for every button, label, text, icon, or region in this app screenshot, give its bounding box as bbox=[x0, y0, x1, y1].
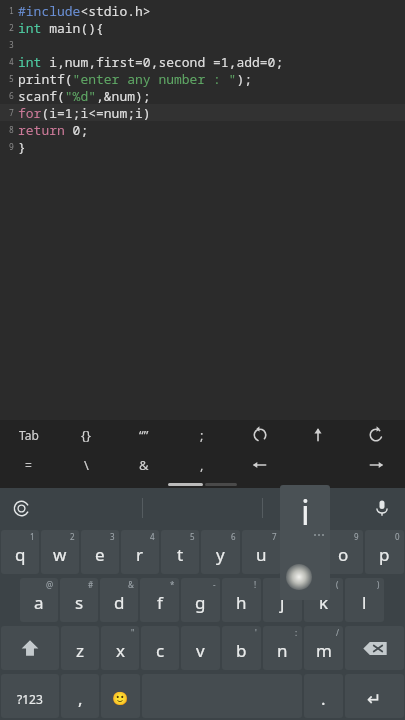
button[interactable]: 9 bbox=[324, 530, 363, 574]
staticText: 8 bbox=[313, 531, 318, 542]
staticText: # bbox=[88, 579, 94, 590]
staticText: d bbox=[114, 591, 125, 614]
staticText: , bbox=[200, 456, 204, 474]
staticText: 9 bbox=[354, 531, 359, 542]
staticText: ' bbox=[255, 627, 257, 638]
button[interactable]: , bbox=[61, 674, 99, 718]
button[interactable]: \ bbox=[57, 450, 115, 480]
staticText: 7 bbox=[9, 107, 14, 118]
staticText: 2 bbox=[9, 22, 14, 33]
button[interactable]: * bbox=[140, 578, 179, 622]
staticText: scanf("%d",&num); bbox=[18, 87, 151, 104]
staticText: @ bbox=[46, 579, 54, 590]
button[interactable]: : bbox=[263, 626, 302, 670]
staticText: i bbox=[301, 489, 310, 535]
button[interactable]: # bbox=[60, 578, 98, 622]
staticText: 6 bbox=[231, 531, 236, 542]
staticText: ! bbox=[254, 579, 257, 590]
button[interactable]: 8 bbox=[283, 530, 322, 574]
button[interactable]: Undo bbox=[231, 420, 289, 450]
button[interactable]: ! bbox=[222, 578, 261, 622]
button[interactable]: = bbox=[0, 450, 57, 480]
staticText: t bbox=[177, 543, 184, 566]
button[interactable]: v bbox=[181, 626, 220, 670]
staticText: int i,num,first=0,second =1,add=0; bbox=[18, 53, 284, 70]
button[interactable]: , bbox=[173, 450, 231, 480]
button[interactable]: ↵ bbox=[345, 674, 404, 718]
staticText: u bbox=[256, 543, 267, 566]
staticText: } bbox=[18, 138, 26, 155]
staticText: b bbox=[236, 639, 247, 662]
button[interactable]: Tab bbox=[0, 420, 57, 450]
button[interactable]: ' bbox=[222, 626, 261, 670]
button[interactable]: - bbox=[181, 578, 220, 622]
staticText: x bbox=[116, 639, 125, 662]
staticText: h bbox=[236, 591, 247, 614]
button[interactable]: c bbox=[141, 626, 179, 670]
button[interactable]: Voice input bbox=[365, 491, 399, 525]
staticText: / bbox=[336, 627, 339, 638]
staticText: ?123 bbox=[17, 691, 43, 707]
staticText: c bbox=[156, 639, 165, 662]
button[interactable]: & bbox=[100, 578, 138, 622]
button[interactable]: 0 bbox=[365, 530, 404, 574]
staticText: ; bbox=[200, 426, 204, 444]
staticText: Tab bbox=[19, 427, 39, 443]
button[interactable]: Move right bbox=[347, 450, 405, 480]
staticText: s bbox=[75, 591, 84, 614]
button[interactable]: {} bbox=[57, 420, 115, 450]
staticText: w bbox=[53, 543, 67, 566]
button[interactable]: “” bbox=[115, 420, 173, 450]
button[interactable]: Redo bbox=[347, 420, 405, 450]
button[interactable]: ? bbox=[263, 578, 302, 622]
button[interactable]: 5 bbox=[161, 530, 199, 574]
staticText: f bbox=[157, 591, 163, 614]
staticText: 2 bbox=[70, 531, 75, 542]
button[interactable]: Shift bbox=[1, 626, 59, 670]
staticText: , bbox=[78, 687, 83, 710]
staticText: 7 bbox=[272, 531, 277, 542]
button[interactable]: 6 bbox=[201, 530, 240, 574]
staticText: for(i=1;i<=num;i) bbox=[18, 104, 151, 121]
button[interactable]: z bbox=[61, 626, 99, 670]
button[interactable]: Move left bbox=[231, 450, 289, 480]
staticText: k bbox=[319, 591, 329, 614]
button[interactable]: Translate bbox=[4, 491, 38, 525]
button[interactable]: ) bbox=[345, 578, 384, 622]
staticText: 1 bbox=[9, 5, 14, 16]
staticText: j bbox=[280, 591, 285, 614]
button[interactable]: 3 bbox=[81, 530, 119, 574]
button[interactable]: / bbox=[304, 626, 343, 670]
staticText: \ bbox=[84, 456, 89, 474]
staticText: y bbox=[216, 543, 225, 566]
button[interactable]: 7 bbox=[242, 530, 281, 574]
staticText: z bbox=[76, 639, 84, 662]
button[interactable]: @ bbox=[20, 578, 58, 622]
staticText: l bbox=[362, 591, 367, 614]
staticText: - bbox=[213, 579, 216, 590]
staticText: ↵ bbox=[367, 689, 382, 709]
staticText: 1 bbox=[30, 531, 35, 542]
staticText: p bbox=[379, 543, 390, 566]
button[interactable]: 2 bbox=[41, 530, 79, 574]
staticText: n bbox=[277, 639, 288, 662]
button[interactable]: ?123 bbox=[1, 674, 59, 718]
button[interactable]: 4 bbox=[121, 530, 159, 574]
staticText: 4 bbox=[9, 56, 14, 67]
button[interactable]: Backspace bbox=[345, 626, 404, 670]
button[interactable]: 🙂 bbox=[101, 674, 140, 718]
button[interactable]: " bbox=[101, 626, 139, 670]
staticText: 4 bbox=[150, 531, 155, 542]
staticText: int main(){ bbox=[18, 19, 104, 36]
button[interactable]: 1 bbox=[1, 530, 39, 574]
staticText: : bbox=[295, 627, 298, 638]
button[interactable]: . bbox=[304, 674, 343, 718]
button[interactable]: ( bbox=[304, 578, 343, 622]
button[interactable]: Move up bbox=[289, 420, 347, 450]
staticText: return 0; bbox=[18, 121, 89, 138]
staticText: 5 bbox=[190, 531, 195, 542]
button[interactable]: & bbox=[115, 450, 173, 480]
button[interactable]: ; bbox=[173, 420, 231, 450]
